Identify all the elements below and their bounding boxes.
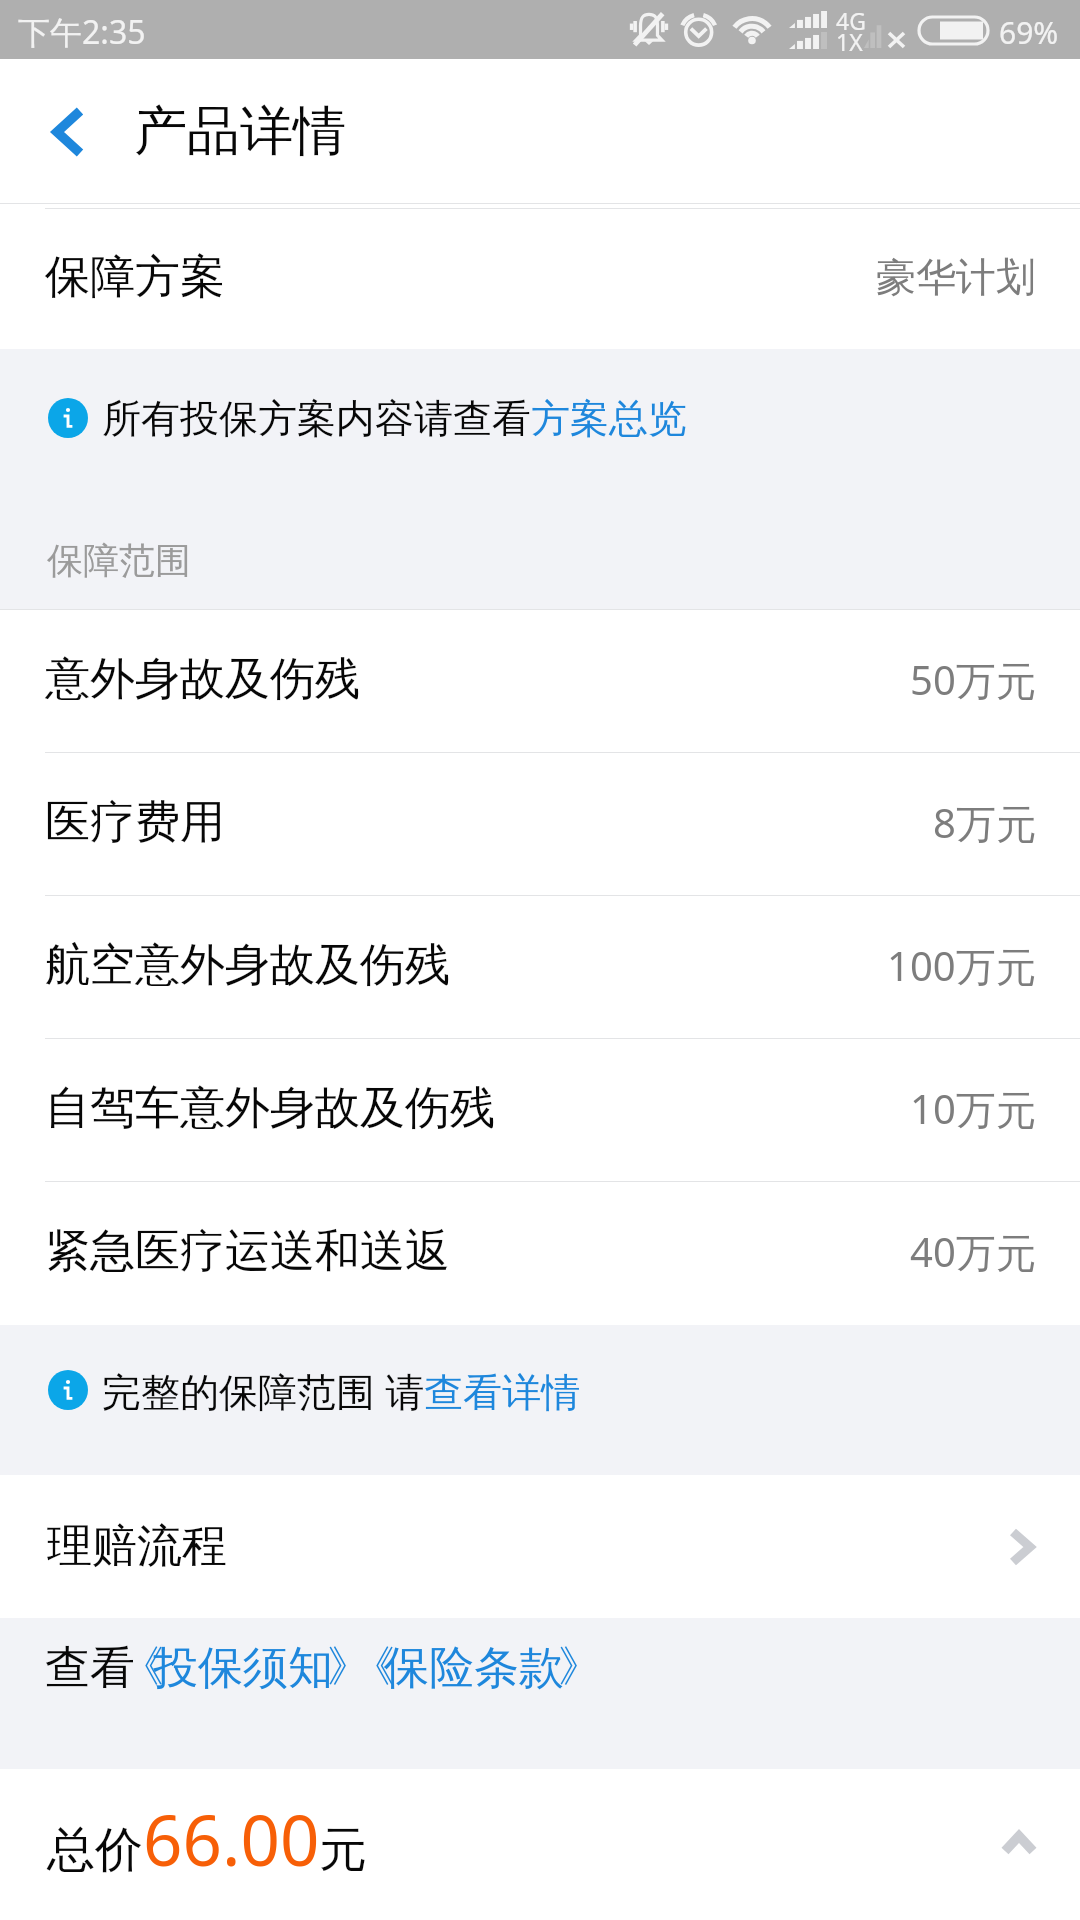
button[interactable]: 航空意外身故及伤残	[0, 896, 1080, 1038]
staticText: 《	[358, 1640, 389, 1694]
staticText: 69%	[999, 12, 1059, 53]
other: More	[1011, 1529, 1033, 1565]
staticText: 投保须知	[153, 1640, 333, 1697]
staticText: 保障方案	[45, 249, 225, 306]
staticText: 总价66.00元	[47, 1792, 368, 1886]
button[interactable]: Back	[0, 59, 132, 203]
staticText: 40万元	[910, 1224, 1036, 1279]
staticText: 》	[564, 1640, 595, 1694]
staticText: 保险条款	[384, 1640, 564, 1697]
staticText: 》	[333, 1640, 364, 1694]
button[interactable]: 《	[358, 1640, 600, 1697]
staticText: 查看	[45, 1640, 135, 1697]
button[interactable]: 所有投保方案内容请查看方案总览	[0, 349, 1080, 479]
button[interactable]: 理赔流程	[0, 1475, 1080, 1618]
button[interactable]: 意外身故及伤残	[0, 610, 1080, 752]
button[interactable]: 医疗费用	[0, 753, 1080, 895]
staticText: 《	[127, 1640, 158, 1694]
button[interactable]: 保障方案	[0, 209, 1080, 349]
staticText: 10万元	[910, 1081, 1036, 1136]
button[interactable]: 紧急医疗运送和送返	[0, 1182, 1080, 1325]
staticText: 下午2:35	[18, 10, 146, 54]
staticText: 意外身故及伤残	[45, 651, 360, 708]
staticText: 航空意外身故及伤残	[45, 937, 450, 994]
staticText: 1X	[836, 26, 863, 57]
button[interactable]: 完整的保障范围 请查看详情	[0, 1325, 1080, 1475]
staticText: 8万元	[933, 795, 1036, 850]
staticText: 100万元	[887, 938, 1036, 993]
staticText: 所有投保方案内容请查看方案总览	[102, 394, 687, 443]
button[interactable]: 《	[127, 1640, 369, 1697]
staticText: 4G	[836, 5, 866, 36]
staticText: 医疗费用	[45, 794, 225, 851]
staticText: 产品详情	[134, 98, 346, 165]
staticText: 豪华计划	[876, 252, 1036, 302]
staticText: 自驾车意外身故及伤残	[45, 1080, 495, 1137]
other: Collapse	[1002, 1833, 1036, 1854]
button[interactable]: 自驾车意外身故及伤残	[0, 1039, 1080, 1181]
staticText: 完整的保障范围 请查看详情	[102, 1364, 581, 1417]
staticText: 紧急医疗运送和送返	[45, 1223, 450, 1280]
staticText: 50万元	[910, 652, 1036, 707]
staticText: 理赔流程	[47, 1518, 227, 1575]
staticText: 保障范围	[47, 538, 191, 583]
